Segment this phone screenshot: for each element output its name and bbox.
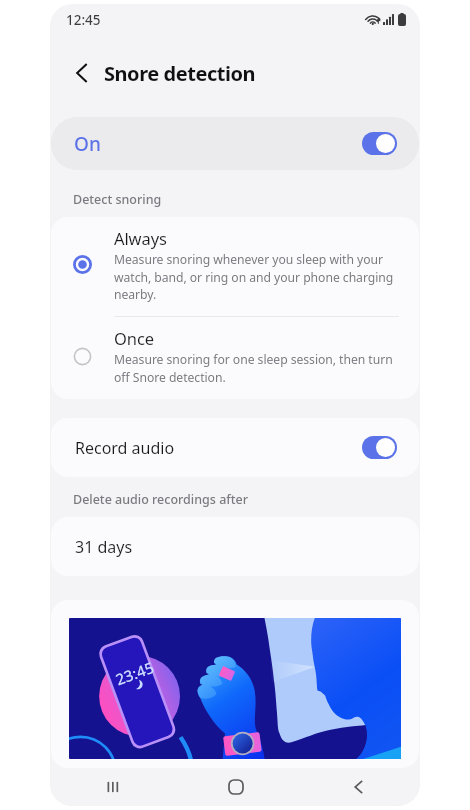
staticText: 12:45 xyxy=(66,11,101,29)
staticText: Always xyxy=(114,227,167,249)
button[interactable]: On xyxy=(362,436,397,459)
button[interactable]: On xyxy=(362,132,397,155)
staticText: 23:45 xyxy=(113,657,157,689)
button[interactable]: Home xyxy=(174,768,297,806)
button[interactable]: Record audio xyxy=(51,418,419,477)
staticText: 31 days xyxy=(75,536,133,558)
button[interactable]: On xyxy=(51,117,419,170)
staticText: Delete audio recordings after xyxy=(73,491,249,508)
button[interactable]: Always xyxy=(51,217,419,316)
button[interactable]: Navigate up xyxy=(60,51,104,95)
button[interactable]: Back xyxy=(297,768,420,806)
staticText: Record audio xyxy=(75,437,175,459)
button[interactable]: Recent apps xyxy=(50,768,174,806)
staticText: Snore detection xyxy=(104,60,256,87)
button[interactable]: Once xyxy=(51,317,419,399)
staticText: Measure snoring whenever you sleep with … xyxy=(114,251,407,302)
staticText: Detect snoring xyxy=(73,191,162,208)
button[interactable]: 31 days xyxy=(51,517,419,576)
staticText: Measure snoring for one sleep session, t… xyxy=(114,351,407,385)
staticText: Once xyxy=(114,327,154,349)
staticText: On xyxy=(74,131,101,157)
